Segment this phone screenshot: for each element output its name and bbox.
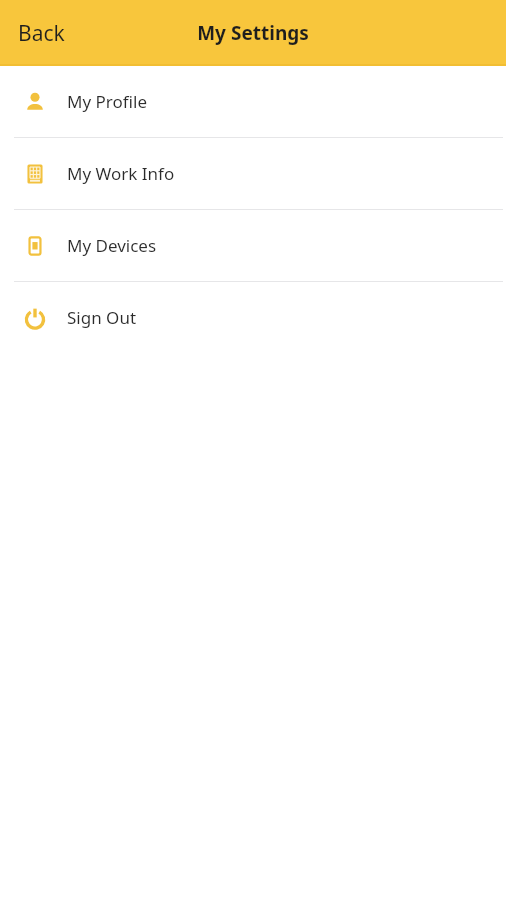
- staticText: Back: [18, 19, 65, 48]
- staticText: My Profile: [67, 90, 147, 113]
- button[interactable]: My Profile: [0, 66, 506, 137]
- staticText: My Work Info: [67, 162, 175, 185]
- staticText: My Settings: [197, 20, 309, 46]
- staticText: Sign Out: [67, 306, 137, 329]
- button[interactable]: My Devices: [0, 210, 506, 281]
- staticText: My Devices: [67, 234, 157, 257]
- button[interactable]: My Work Info: [0, 138, 506, 209]
- button[interactable]: Back: [4, 9, 79, 58]
- button[interactable]: Sign Out: [0, 282, 506, 353]
